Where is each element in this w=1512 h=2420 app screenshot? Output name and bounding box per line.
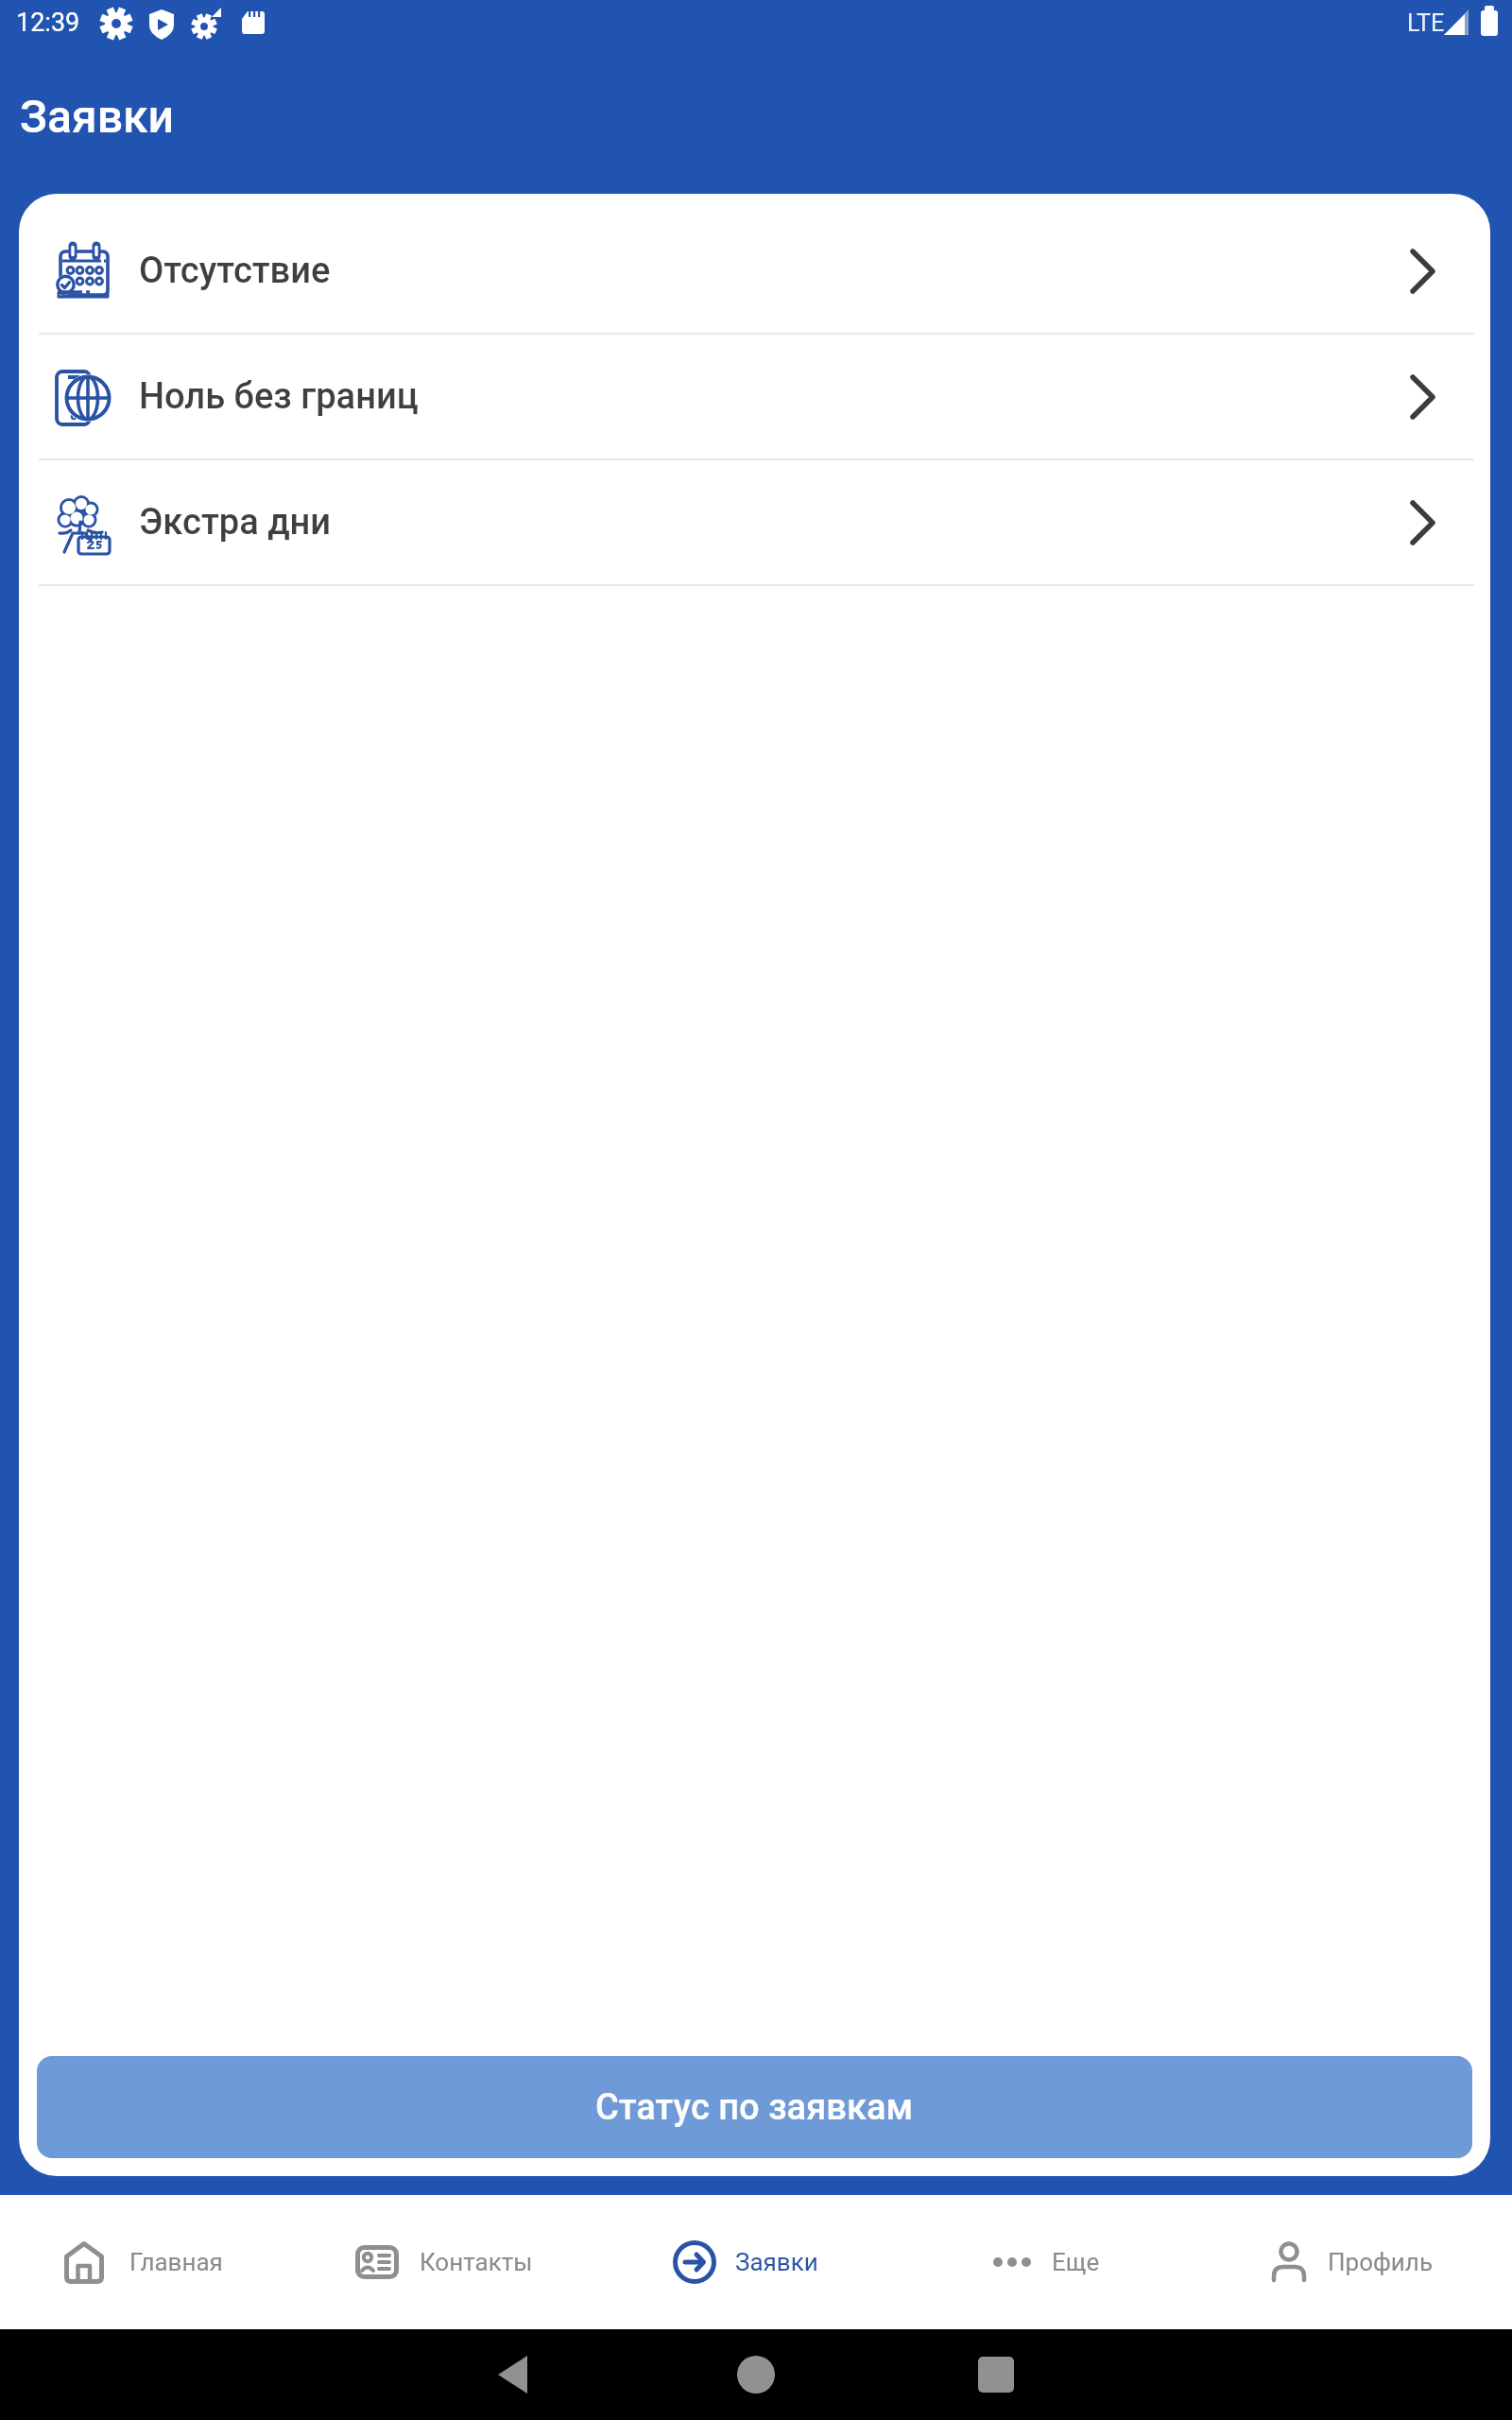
- button[interactable]: Профиль: [1270, 2195, 1433, 2329]
- staticText: 12:39: [16, 8, 80, 38]
- button[interactable]: Статус по заявкам: [37, 2056, 1472, 2158]
- staticText: Экстра дни: [139, 501, 332, 544]
- staticText: Еще: [1052, 2248, 1100, 2276]
- staticText: Заявки: [20, 90, 175, 143]
- staticText: Ноль без границ: [139, 375, 419, 418]
- button[interactable]: Заявки: [673, 2195, 818, 2329]
- staticText: LTE: [1407, 9, 1445, 37]
- staticText: Заявки: [735, 2248, 818, 2276]
- staticText: Статус по заявкам: [595, 2086, 914, 2129]
- button[interactable]: Контакты: [355, 2195, 533, 2329]
- staticText: Отсутствие: [139, 250, 331, 292]
- button[interactable]: Главная: [64, 2195, 223, 2329]
- staticText: Профиль: [1328, 2248, 1433, 2276]
- button[interactable]: Экстра дни: [19, 460, 1490, 584]
- button[interactable]: Отсутствие: [19, 209, 1490, 333]
- staticText: Контакты: [420, 2248, 533, 2276]
- staticText: Главная: [129, 2248, 223, 2276]
- button[interactable]: Ноль без границ: [19, 335, 1490, 458]
- button[interactable]: Еще: [992, 2195, 1100, 2329]
